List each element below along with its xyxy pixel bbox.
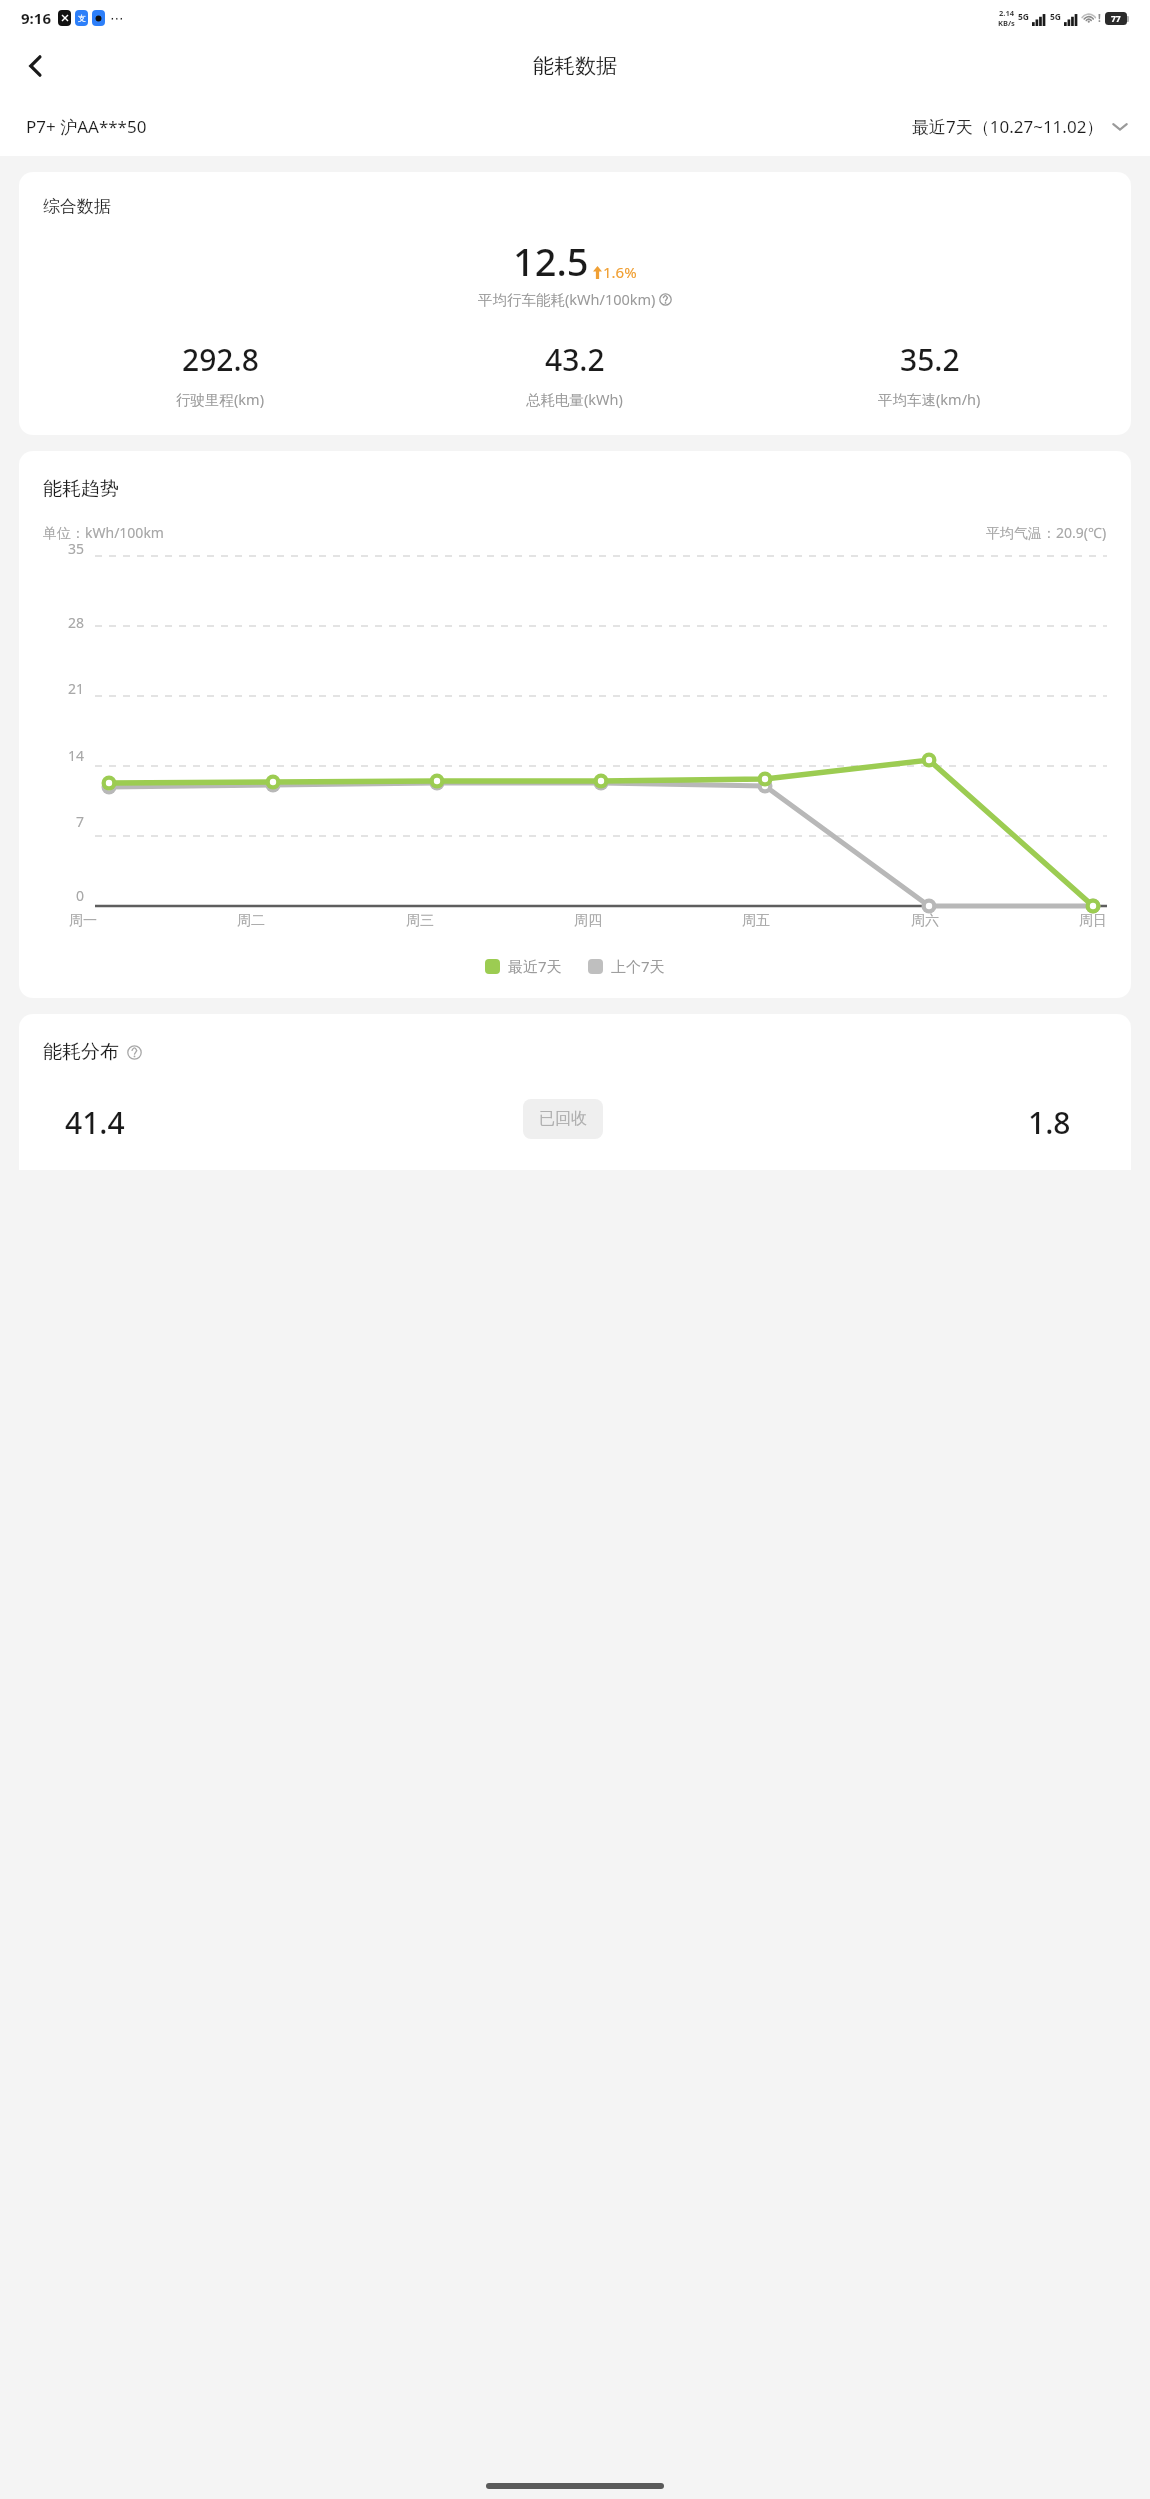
- staticText: 平均车速(km/h): [878, 389, 981, 409]
- staticText: 最近7天（10.27~11.02）: [912, 115, 1104, 138]
- staticText: 0: [76, 886, 85, 905]
- button[interactable]: 43.2: [397, 339, 752, 409]
- staticText: 35: [68, 539, 85, 558]
- button[interactable]: 能耗分布: [19, 1014, 1131, 1170]
- staticText: 周日: [1079, 912, 1107, 930]
- staticText: 28: [68, 613, 85, 632]
- staticText: 能耗分布: [43, 1040, 119, 1064]
- staticText: 周四: [574, 912, 602, 930]
- staticText: 14: [68, 746, 85, 765]
- button[interactable]: 最近7天: [485, 956, 562, 976]
- button[interactable]: 292.8: [43, 339, 397, 409]
- staticText: 292.8: [182, 339, 259, 380]
- staticText: 21: [68, 679, 85, 698]
- staticText: 周一: [69, 912, 97, 930]
- staticText: !: [1098, 11, 1101, 25]
- staticText: 43.2: [545, 339, 605, 380]
- staticText: 支: [78, 13, 86, 23]
- staticText: 77: [1111, 13, 1121, 25]
- staticText: 12.5: [513, 235, 589, 287]
- staticText: 9:16: [21, 8, 51, 28]
- staticText: 41.4: [65, 1102, 125, 1143]
- staticText: 周六: [911, 912, 939, 930]
- staticText: 平均气温：20.9(℃): [986, 523, 1107, 542]
- button[interactable]: Back: [10, 40, 62, 92]
- staticText: 周五: [742, 912, 770, 930]
- button[interactable]: P7+ 沪AA***50: [26, 115, 147, 138]
- staticText: 行驶里程(km): [176, 389, 265, 409]
- staticText: 5G: [1018, 11, 1030, 23]
- button[interactable]: 上个7天: [588, 956, 665, 976]
- staticText: 已回收: [539, 1109, 587, 1129]
- button[interactable]: 能耗趋势: [19, 451, 1131, 998]
- staticText: 周二: [237, 912, 265, 930]
- staticText: 1.8: [1028, 1102, 1071, 1143]
- staticText: 平均行车能耗(kWh/100km): [478, 289, 656, 309]
- button[interactable]: 最近7天（10.27~11.02）: [912, 115, 1128, 138]
- staticText: 35.2: [900, 339, 960, 380]
- staticText: ⋯: [110, 10, 124, 26]
- staticText: 综合数据: [43, 196, 111, 217]
- staticText: 1.6%: [603, 262, 637, 282]
- staticText: 7: [76, 812, 85, 831]
- button[interactable]: 综合数据: [19, 172, 1131, 435]
- button[interactable]: 35.2: [752, 339, 1107, 409]
- staticText: 能耗趋势: [43, 477, 119, 501]
- staticText: 总耗电量(kWh): [526, 389, 623, 409]
- staticText: 上个7天: [611, 956, 665, 976]
- staticText: 周三: [406, 912, 434, 930]
- staticText: 2.14: [999, 8, 1014, 18]
- staticText: 能耗数据: [533, 53, 617, 79]
- staticText: KB/s: [998, 18, 1015, 28]
- staticText: 5G: [1050, 11, 1062, 23]
- staticText: 单位：kWh/100km: [43, 523, 164, 542]
- staticText: 最近7天: [508, 956, 562, 976]
